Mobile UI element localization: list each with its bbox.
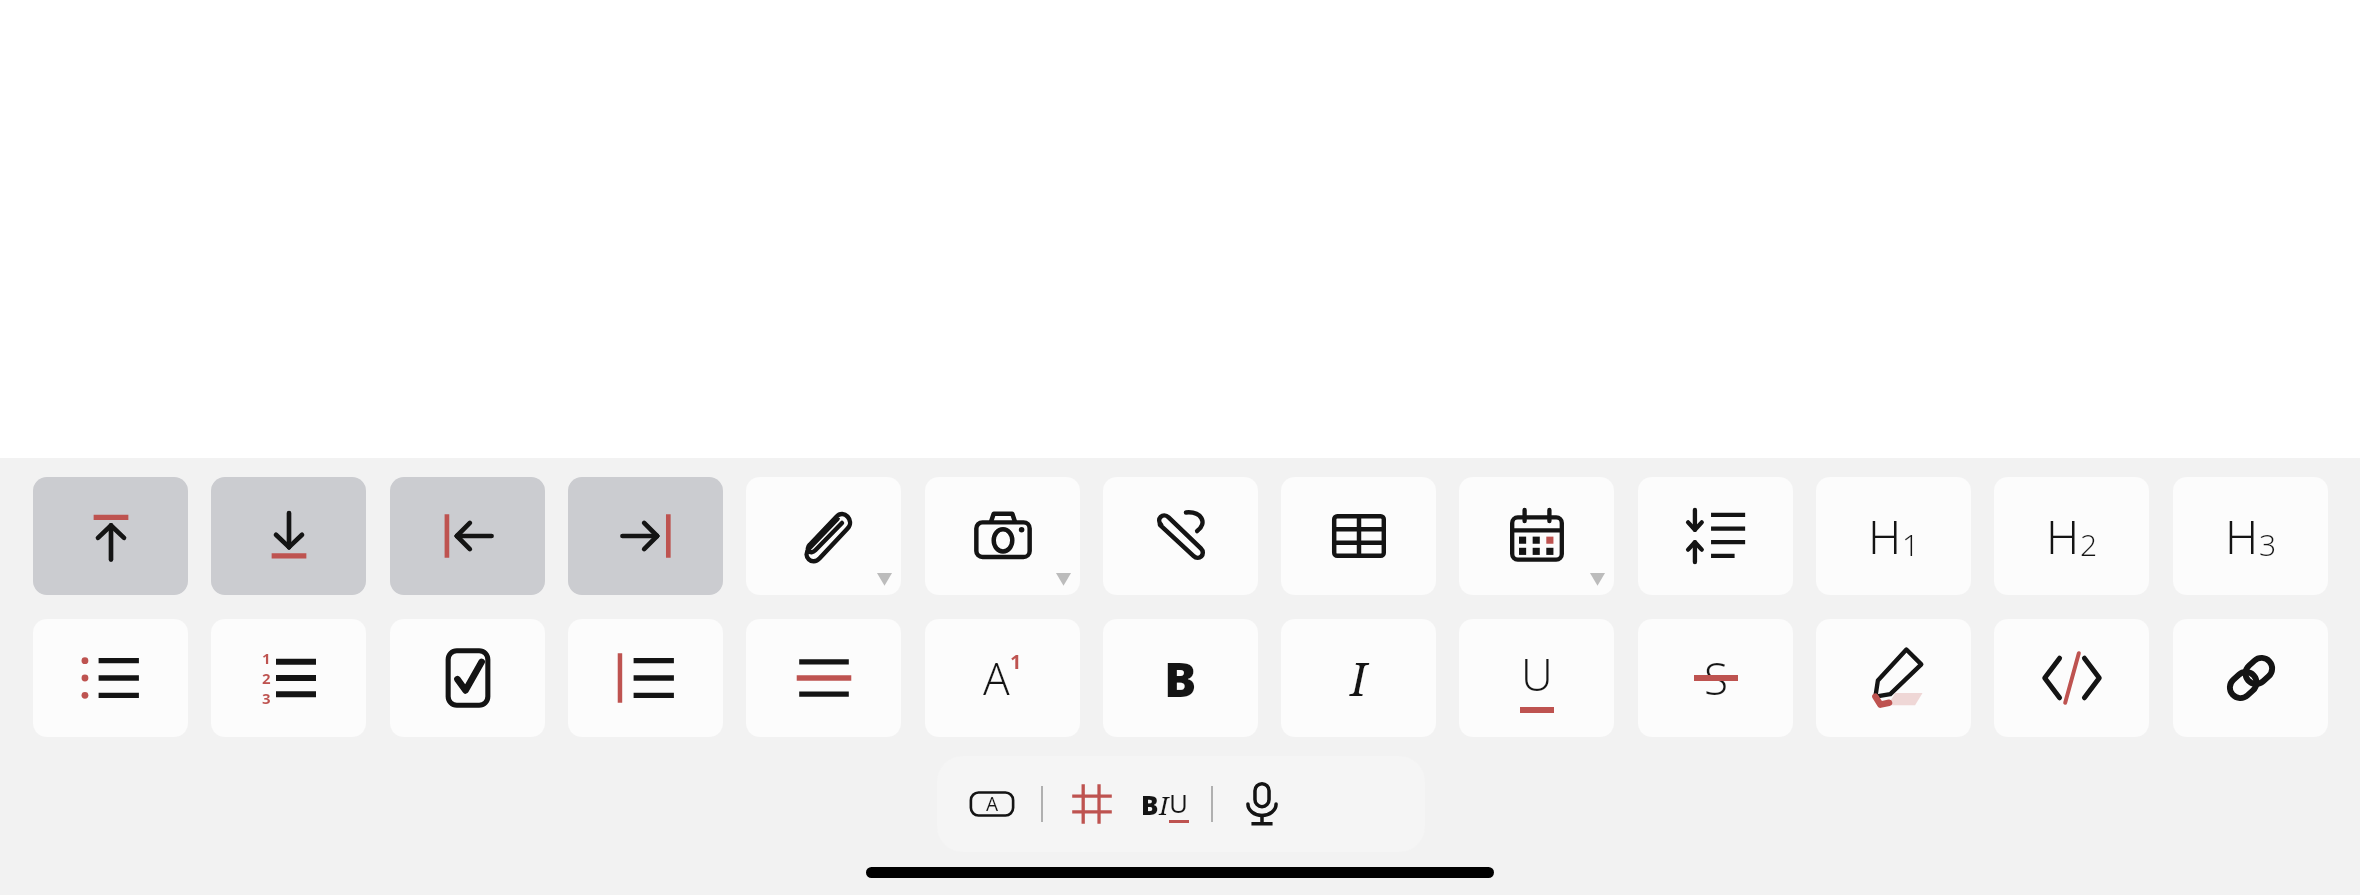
button[interactable]: Voice input [1235, 777, 1289, 831]
button[interactable]: Align [746, 619, 901, 737]
button[interactable]: Strikethrough [1638, 619, 1793, 737]
staticText: 2 [262, 668, 271, 688]
staticText: H [2225, 505, 2259, 568]
staticText: A [986, 791, 999, 817]
button[interactable]: Insert date [1459, 477, 1614, 595]
button[interactable]: Indent [568, 477, 723, 595]
staticText: B [1141, 787, 1159, 822]
button[interactable]: Formatting options [1065, 777, 1119, 831]
button[interactable]: Bold italic underline [1141, 785, 1189, 823]
button[interactable]: Heading 1 [1816, 477, 1971, 595]
staticText: 1 [1902, 524, 1920, 565]
button[interactable]: Insert table [1281, 477, 1436, 595]
staticText: I [1159, 787, 1169, 822]
staticText: H [1868, 505, 1902, 568]
staticText: 2 [2080, 524, 2098, 565]
button[interactable]: Footnote [925, 619, 1080, 737]
button[interactable]: Numbered list [211, 619, 366, 737]
button[interactable]: Camera [925, 477, 1080, 595]
button[interactable]: Block quote [568, 619, 723, 737]
staticText: S [1704, 648, 1729, 708]
staticText: 1 [1010, 648, 1022, 675]
staticText: 1 [262, 648, 271, 668]
staticText: 3 [2259, 524, 2277, 565]
button[interactable]: Line spacing [1638, 477, 1793, 595]
button[interactable]: Heading 3 [2173, 477, 2328, 595]
button[interactable]: Move to top [33, 477, 188, 595]
staticText: H [2046, 505, 2080, 568]
staticText: U [1169, 785, 1189, 820]
staticText: 3 [262, 688, 271, 708]
button[interactable]: Insert link [2173, 619, 2328, 737]
button[interactable]: Underline [1459, 619, 1614, 737]
button[interactable]: Heading 2 [1994, 477, 2149, 595]
button[interactable]: Move to bottom [211, 477, 366, 595]
button[interactable]: Italic [1281, 619, 1436, 737]
button[interactable]: Scribble [1103, 477, 1258, 595]
button[interactable]: Attach file [746, 477, 901, 595]
staticText: U [1521, 644, 1553, 704]
button[interactable]: Highlight [1816, 619, 1971, 737]
staticText: I [1350, 647, 1367, 710]
button[interactable]: Checklist [390, 619, 545, 737]
button[interactable]: Bold [1103, 619, 1258, 737]
staticText: B [1164, 646, 1197, 711]
button[interactable]: Outdent [390, 477, 545, 595]
button[interactable]: Code block [1994, 619, 2149, 737]
staticText: A [983, 648, 1010, 708]
button[interactable]: Bulleted list [33, 619, 188, 737]
button[interactable]: Font [965, 777, 1019, 831]
